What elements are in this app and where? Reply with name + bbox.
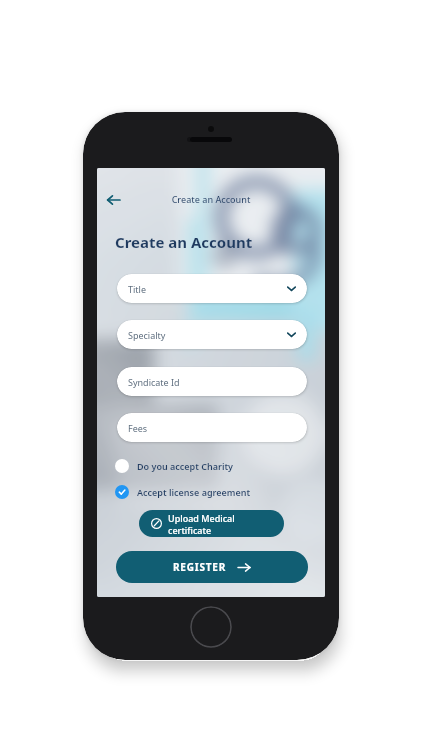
button[interactable]: Title bbox=[117, 274, 307, 303]
staticText: Title bbox=[128, 283, 146, 295]
staticText: REGISTER bbox=[173, 560, 227, 574]
button[interactable]: Syndicate Id bbox=[117, 367, 307, 396]
button[interactable]: Specialty bbox=[117, 320, 307, 349]
button[interactable]: REGISTER bbox=[116, 551, 308, 583]
button[interactable]: Accept license agreement bbox=[115, 482, 251, 502]
staticText: Upload Medical certificate bbox=[168, 512, 272, 536]
staticText: Accept license agreement bbox=[137, 486, 251, 498]
staticText: Syndicate Id bbox=[128, 376, 180, 388]
staticText: Specialty bbox=[128, 329, 166, 341]
button[interactable]: Fees bbox=[117, 413, 307, 442]
staticText: Create an Account bbox=[115, 232, 253, 252]
staticText: Fees bbox=[128, 422, 148, 434]
button[interactable]: Upload Medical certificate bbox=[139, 510, 284, 537]
button[interactable]: Do you accept Charity bbox=[115, 456, 234, 476]
staticText: Create an Account bbox=[97, 193, 325, 205]
button[interactable]: Back bbox=[101, 188, 125, 212]
staticText: Do you accept Charity bbox=[137, 460, 234, 472]
